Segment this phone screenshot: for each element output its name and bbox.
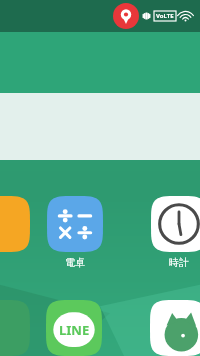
button[interactable]: App [150, 300, 200, 356]
button[interactable]: Location [113, 3, 139, 29]
staticText: 時計 [150, 256, 200, 269]
button[interactable]: 時計 [150, 196, 200, 269]
staticText: LINE [59, 321, 90, 339]
button[interactable]: LINE [46, 300, 102, 356]
button[interactable]: 電卓 [46, 196, 104, 269]
staticText: 電卓 [46, 256, 104, 269]
button[interactable]: App [0, 300, 30, 356]
button[interactable]: App [0, 196, 30, 252]
staticText: VoLTE [156, 12, 174, 20]
